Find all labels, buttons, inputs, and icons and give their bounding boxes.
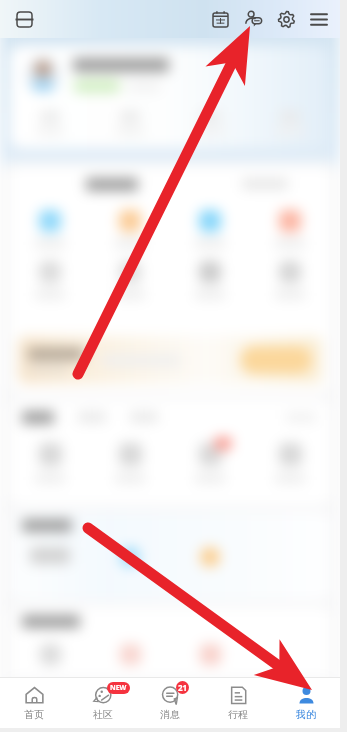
staticText: NEW (110, 683, 127, 693)
button[interactable]: NEW (68, 678, 136, 728)
staticText: 21 (178, 682, 188, 693)
staticText: 社区 (93, 708, 113, 721)
button[interactable]: Customer service (239, 5, 267, 33)
staticText: 我的 (296, 708, 316, 721)
button[interactable]: 首页 (0, 678, 68, 728)
button[interactable]: 21 (136, 678, 204, 728)
button[interactable]: 我的 (272, 678, 340, 728)
button[interactable]: Check in (206, 5, 234, 33)
button[interactable]: Menu (305, 5, 333, 33)
staticText: 首页 (24, 708, 44, 721)
staticText: 行程 (228, 708, 248, 721)
staticText: 消息 (160, 708, 180, 721)
button[interactable]: 行程 (204, 678, 272, 728)
button[interactable]: Split screen (11, 6, 37, 32)
button[interactable]: Settings (272, 5, 300, 33)
